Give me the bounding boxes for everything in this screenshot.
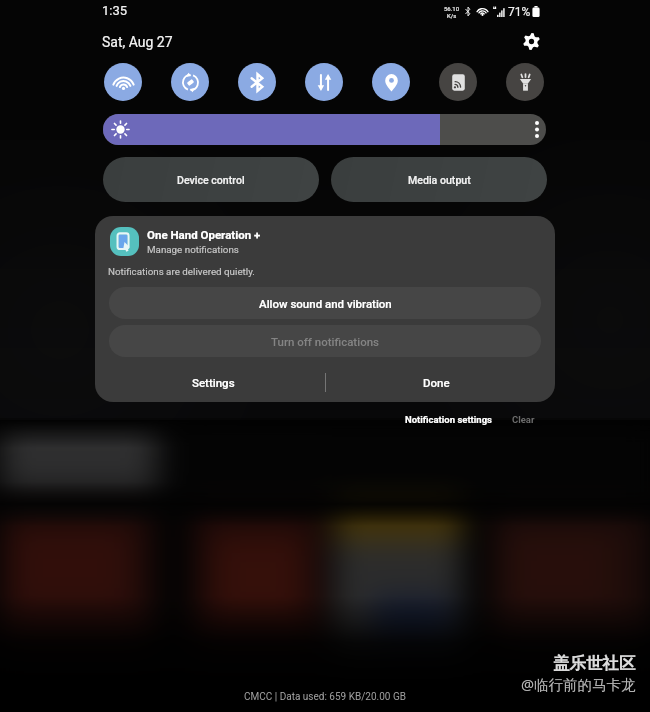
staticText: 盖乐世社区 <box>553 653 636 674</box>
button[interactable]: Settings <box>518 28 544 54</box>
staticText: Clear <box>512 414 535 425</box>
staticText: Media output <box>408 174 471 186</box>
button[interactable]: Flashlight <box>506 63 544 101</box>
button[interactable]: Sound mode <box>171 63 209 101</box>
staticText: Sat, Aug 27 <box>102 34 173 50</box>
staticText: 71% <box>508 5 531 19</box>
button[interactable]: Location <box>372 63 410 101</box>
button[interactable]: Turn off notifications <box>109 325 541 357</box>
staticText: 56.10 <box>444 5 460 12</box>
staticText: One Hand Operation + <box>147 228 261 241</box>
staticText: Notifications are delivered quietly. <box>108 266 255 277</box>
staticText: K/s <box>447 12 457 19</box>
button[interactable]: NFC <box>439 63 477 101</box>
button[interactable]: Settings <box>107 364 320 400</box>
button[interactable]: Notification settings <box>405 409 492 429</box>
staticText: CMCC | Data used: 659 KB/20.00 GB <box>244 691 406 703</box>
button[interactable]: Allow sound and vibration <box>109 287 541 319</box>
button[interactable]: Wi-Fi <box>104 63 142 101</box>
button[interactable]: Mobile data <box>305 63 343 101</box>
staticText: Device control <box>177 174 245 186</box>
staticText: Manage notifications <box>147 244 239 255</box>
button[interactable]: Media output <box>331 157 547 202</box>
staticText: @临行前的马卡龙 <box>521 674 636 694</box>
button[interactable]: Device control <box>103 157 319 202</box>
staticText: Notification settings <box>405 414 492 425</box>
button[interactable]: Clear <box>512 409 535 429</box>
button[interactable]: Bluetooth <box>238 63 276 101</box>
staticText: 1:35 <box>102 3 128 18</box>
staticText: Settings <box>192 376 235 389</box>
staticText: Turn off notifications <box>271 335 379 348</box>
staticText: Done <box>423 376 450 389</box>
button[interactable]: Brightness <box>103 114 546 145</box>
staticText: Allow sound and vibration <box>259 297 392 310</box>
button[interactable]: Done <box>330 364 543 400</box>
